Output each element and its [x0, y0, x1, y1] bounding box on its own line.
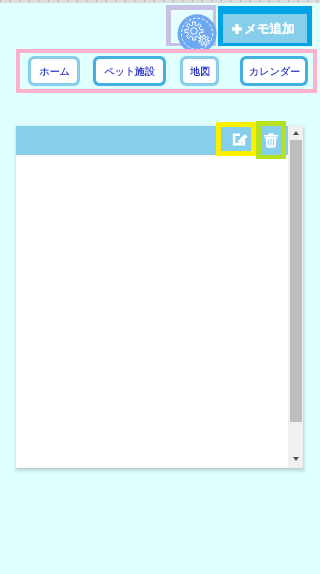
- button[interactable]: Edit: [221, 127, 251, 151]
- button[interactable]: ホーム: [31, 59, 77, 83]
- staticText: メモ追加: [244, 21, 295, 37]
- staticText: カレンダー: [249, 65, 300, 78]
- button[interactable]: メモ追加: [223, 14, 307, 43]
- staticText: 地図: [190, 65, 210, 78]
- staticText: ペット施設: [104, 65, 155, 78]
- staticText: ホーム: [39, 65, 70, 78]
- button[interactable]: 地図: [183, 59, 216, 83]
- button[interactable]: ペット施設: [96, 59, 163, 83]
- button[interactable]: Settings: [171, 10, 213, 43]
- button[interactable]: カレンダー: [243, 59, 305, 83]
- button[interactable]: Delete: [261, 126, 281, 155]
